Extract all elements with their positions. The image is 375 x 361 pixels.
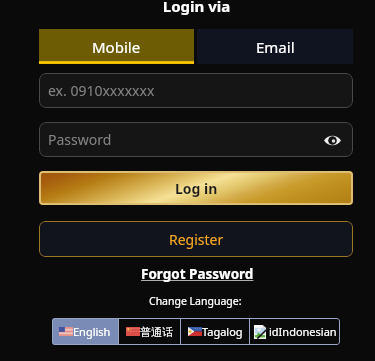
staticText: Change Language: [149,294,242,308]
staticText: Register [169,230,224,249]
button[interactable]: Show password [321,129,343,151]
button[interactable]: Email [197,29,353,64]
staticText: 普通话 [140,325,173,339]
button[interactable]: Tagalog [181,318,249,345]
staticText: Password [48,130,112,149]
staticText: Mobile [92,37,141,57]
staticText: idIndonesian [269,324,337,339]
button[interactable]: Password [39,122,353,157]
button[interactable]: Log in [39,171,353,205]
button[interactable]: ex. 0910xxxxxxx [39,73,353,108]
staticText: English [73,324,111,339]
staticText: Tagalog [202,324,243,339]
button[interactable]: Forgot Password [141,265,254,283]
button[interactable]: Mobile [39,29,194,64]
staticText: Email [256,37,295,57]
button[interactable]: idIndonesian [250,318,340,345]
button[interactable]: Register [39,221,353,257]
staticText: Login via [9,0,375,16]
staticText: ex. 0910xxxxxxx [48,81,155,100]
button[interactable]: English [52,318,118,345]
staticText: Log in [175,179,218,198]
button[interactable]: 普通话 [119,318,180,345]
